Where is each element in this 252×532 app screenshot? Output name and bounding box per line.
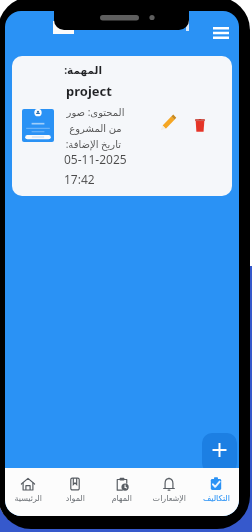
staticText: تاريخ الإضافة: — [65, 137, 121, 151]
staticText: 17:42 — [64, 171, 95, 187]
staticText: الرئيسية — [14, 494, 42, 503]
button[interactable]: الإشعارات — [145, 468, 192, 516]
button[interactable]: المهام — [98, 468, 145, 516]
staticText: التكاليف — [202, 494, 230, 503]
button[interactable]: Menu — [213, 27, 229, 39]
button[interactable]: الرئيسية — [5, 468, 51, 516]
staticText: الإشعارات — [152, 494, 186, 503]
staticText: المهمة: — [64, 63, 102, 77]
staticText: 05-11-2025 — [64, 151, 127, 167]
button[interactable]: Add — [202, 433, 237, 473]
button[interactable]: التكاليف — [192, 468, 239, 516]
button[interactable]: Delete — [195, 119, 205, 132]
staticText: المحتوى: صور من المشروع — [66, 105, 125, 135]
button[interactable]: Edit — [159, 113, 177, 131]
button[interactable]: المواد — [51, 468, 98, 516]
staticText: المهام — [111, 494, 132, 503]
button[interactable]: المهمة: — [12, 56, 232, 196]
staticText: المواد — [65, 494, 85, 503]
staticText: project — [66, 82, 112, 100]
